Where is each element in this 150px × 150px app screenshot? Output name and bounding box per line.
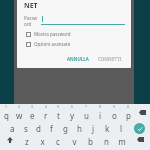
staticText: g bbox=[63, 123, 68, 134]
button[interactable]: h bbox=[72, 121, 86, 136]
staticText: d bbox=[36, 123, 41, 134]
staticText: f bbox=[50, 123, 53, 134]
button[interactable]: b bbox=[82, 136, 98, 150]
staticText: m bbox=[118, 136, 126, 147]
button[interactable]: 2 bbox=[13, 104, 26, 121]
staticText: 5 bbox=[57, 104, 60, 109]
staticText: 3 bbox=[31, 104, 34, 109]
staticText: r bbox=[44, 110, 48, 121]
button[interactable]: Mostra password bbox=[24, 31, 125, 37]
button[interactable]: j bbox=[86, 121, 100, 136]
button[interactable]: d bbox=[32, 121, 45, 136]
staticText: ord bbox=[24, 21, 32, 27]
staticText: CONNETTI bbox=[98, 56, 122, 62]
staticText: 6 bbox=[71, 104, 74, 109]
staticText: l bbox=[120, 123, 123, 134]
staticText: h bbox=[77, 123, 82, 134]
button[interactable]: x bbox=[34, 136, 50, 150]
staticText: q bbox=[4, 110, 9, 121]
staticText: 1 bbox=[5, 104, 8, 109]
button[interactable]: Delete bbox=[130, 136, 150, 150]
staticText: Passw bbox=[24, 15, 38, 21]
staticText: 7 bbox=[85, 104, 88, 109]
staticText: n bbox=[104, 136, 109, 147]
staticText: c bbox=[56, 136, 60, 147]
staticText: a bbox=[10, 123, 15, 134]
button[interactable]: Opzioni avanzate bbox=[24, 41, 125, 47]
staticText: 8 bbox=[99, 104, 102, 109]
staticText: t bbox=[57, 110, 60, 121]
button[interactable]: CONNETTI bbox=[95, 54, 125, 64]
staticText: NET bbox=[24, 1, 38, 11]
button[interactable]: Shift bbox=[0, 136, 19, 150]
button[interactable]: 1 bbox=[0, 104, 13, 121]
button[interactable]: ANNULLA bbox=[64, 54, 92, 64]
staticText: v bbox=[72, 136, 77, 147]
staticText: 9 bbox=[113, 104, 116, 109]
button[interactable]: 8 bbox=[93, 104, 107, 121]
button[interactable] bbox=[41, 16, 125, 25]
button[interactable]: 0 bbox=[121, 104, 135, 121]
button[interactable]: f bbox=[45, 121, 58, 136]
staticText: 0 bbox=[127, 104, 130, 109]
staticText: s bbox=[24, 123, 28, 134]
button[interactable]: a bbox=[6, 121, 19, 136]
staticText: 2 bbox=[18, 104, 21, 109]
staticText: Opzioni avanzate bbox=[34, 41, 71, 47]
staticText: o bbox=[112, 110, 117, 121]
button[interactable]: v bbox=[66, 136, 82, 150]
staticText: w bbox=[16, 110, 23, 121]
staticText: u bbox=[84, 110, 89, 121]
button[interactable]: 7 bbox=[79, 104, 93, 121]
staticText: j bbox=[92, 123, 95, 134]
button[interactable]: c bbox=[50, 136, 66, 150]
button[interactable]: Enter bbox=[134, 123, 145, 134]
button[interactable]: 4 bbox=[39, 104, 52, 121]
button[interactable]: 3 bbox=[26, 104, 39, 121]
button[interactable]: g bbox=[58, 121, 72, 136]
staticText: ANNULLA bbox=[67, 56, 89, 62]
button[interactable]: 5 bbox=[52, 104, 65, 121]
staticText: p bbox=[126, 110, 131, 121]
button[interactable]: s bbox=[19, 121, 32, 136]
button[interactable]: 6 bbox=[65, 104, 79, 121]
button[interactable]: z bbox=[19, 136, 34, 150]
staticText: k bbox=[105, 123, 110, 134]
staticText: b bbox=[88, 136, 93, 147]
button[interactable]: Backspace bbox=[135, 104, 150, 121]
staticText: x bbox=[40, 136, 45, 147]
button[interactable]: m bbox=[114, 136, 130, 150]
staticText: y bbox=[70, 110, 75, 121]
staticText: 4 bbox=[45, 104, 48, 109]
staticText: i bbox=[99, 110, 102, 121]
button[interactable]: 9 bbox=[107, 104, 121, 121]
staticText: Mostra password bbox=[34, 31, 71, 37]
button[interactable]: l bbox=[114, 121, 128, 136]
staticText: z bbox=[25, 136, 29, 147]
staticText: e bbox=[30, 110, 35, 121]
button[interactable]: k bbox=[100, 121, 114, 136]
button[interactable]: n bbox=[98, 136, 114, 150]
